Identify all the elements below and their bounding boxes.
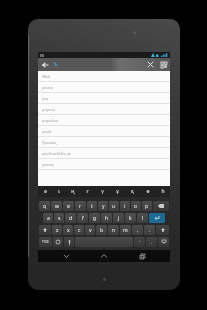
button[interactable]: Back (40, 60, 50, 70)
staticText: o (134, 203, 138, 210)
staticText: h (105, 215, 109, 222)
button[interactable]: h (101, 213, 112, 223)
button[interactable]: . (144, 225, 155, 235)
button[interactable]: Backspace (153, 201, 169, 211)
button[interactable]: p (142, 201, 152, 211)
staticText: ң (71, 188, 75, 195)
button[interactable]: ρεωλωεδελ'ε,σε (38, 148, 170, 159)
button[interactable]: ө (140, 186, 155, 197)
button[interactable]: Language (53, 237, 63, 247)
staticText: t (91, 203, 93, 210)
button[interactable]: e (63, 201, 74, 211)
button[interactable]: a (43, 213, 53, 223)
button[interactable]: ң (66, 186, 80, 197)
staticText: e (67, 203, 70, 210)
staticText: h (161, 188, 165, 195)
staticText: ə (44, 188, 47, 195)
button[interactable]: b (96, 225, 107, 235)
button[interactable]: Space (75, 237, 133, 247)
staticText: i (124, 203, 126, 210)
button[interactable]: ə (38, 186, 52, 197)
staticText: f (82, 215, 84, 222)
button[interactable]: , (132, 225, 143, 235)
staticText: c (78, 227, 81, 234)
staticText: г (86, 188, 89, 195)
staticText: v (89, 227, 92, 234)
button[interactable]: ρεωσγ (38, 159, 170, 170)
staticText: n (112, 227, 116, 234)
button[interactable]: Enter (149, 213, 165, 223)
button[interactable]: Shift (39, 225, 51, 235)
button[interactable]: c (74, 225, 84, 235)
button[interactable]: Recents (132, 250, 152, 262)
staticText: q (43, 203, 47, 210)
button[interactable]: Hide keyboard (158, 237, 169, 247)
button[interactable]: h (155, 186, 170, 197)
button[interactable]: j (113, 213, 124, 223)
button[interactable]: Search input (51, 60, 61, 70)
staticText: k (129, 215, 132, 222)
staticText: j (118, 215, 120, 222)
button[interactable]: i (120, 201, 130, 211)
button[interactable]: u (109, 201, 119, 211)
button[interactable]: n (108, 225, 119, 235)
button[interactable]: Scan (159, 60, 168, 69)
button[interactable]: қ (125, 186, 140, 197)
staticText: ұ (116, 188, 119, 195)
button[interactable]: ү (95, 186, 110, 197)
button[interactable]: ρεωλ (38, 126, 170, 137)
button[interactable]: ΝΕΑ (38, 71, 170, 82)
button[interactable]: Symbols (39, 237, 52, 247)
button[interactable]: d (65, 213, 76, 223)
button[interactable]: Back (56, 250, 76, 262)
button[interactable]: ρηγωλεκ (38, 115, 170, 126)
button[interactable]: Period (146, 237, 157, 247)
button[interactable]: ұ (110, 186, 125, 197)
button[interactable]: s (54, 213, 64, 223)
button[interactable]: Shift (156, 225, 169, 235)
staticText: ' (139, 240, 140, 245)
staticText: ΝΕΑ (42, 74, 50, 79)
button[interactable]: v (85, 225, 95, 235)
button[interactable]: г (80, 186, 95, 197)
button[interactable]: g (89, 213, 100, 223)
staticText: ?123 (42, 240, 49, 244)
button[interactable]: o (131, 201, 141, 211)
button[interactable]: ρεγ (38, 93, 170, 104)
button[interactable]: w (51, 201, 62, 211)
button[interactable]: ι (52, 186, 66, 197)
staticText: ү (101, 188, 104, 195)
staticText: ρεωλ (42, 129, 52, 134)
staticText: ρεγ (42, 96, 49, 101)
staticText: g (93, 215, 97, 222)
staticText: u (112, 203, 116, 210)
staticText: l (142, 215, 144, 222)
staticText: a (47, 215, 50, 222)
staticText: y (102, 203, 105, 210)
staticText: ρηγωω (42, 107, 56, 112)
button[interactable]: m (120, 225, 131, 235)
staticText: ρεωλωεδελ'ε,σε (42, 151, 71, 156)
button[interactable]: f (77, 213, 88, 223)
staticText: b (100, 227, 104, 234)
button[interactable]: Apostrophe (134, 237, 145, 247)
staticText: ρεωσγ (42, 162, 54, 167)
button[interactable]: Home (94, 250, 114, 262)
button[interactable]: q (39, 201, 50, 211)
button[interactable]: ρεσεα (38, 82, 170, 93)
button[interactable]: y (98, 201, 108, 211)
button[interactable]: Ϋρωσαε, (38, 137, 170, 148)
button[interactable]: k (125, 213, 136, 223)
button[interactable]: ρηγωω (38, 104, 170, 115)
staticText: ρηγωλεκ (42, 118, 59, 123)
staticText: p (145, 203, 149, 210)
button[interactable]: z (52, 225, 62, 235)
button[interactable]: l (137, 213, 148, 223)
button[interactable]: x (63, 225, 73, 235)
button[interactable]: Clear (146, 60, 155, 69)
button[interactable]: Voice input (64, 237, 74, 247)
button[interactable]: t (87, 201, 97, 211)
button[interactable]: r (75, 201, 86, 211)
staticText: w (55, 203, 59, 210)
staticText: Ϋρωσαε, (42, 140, 58, 145)
